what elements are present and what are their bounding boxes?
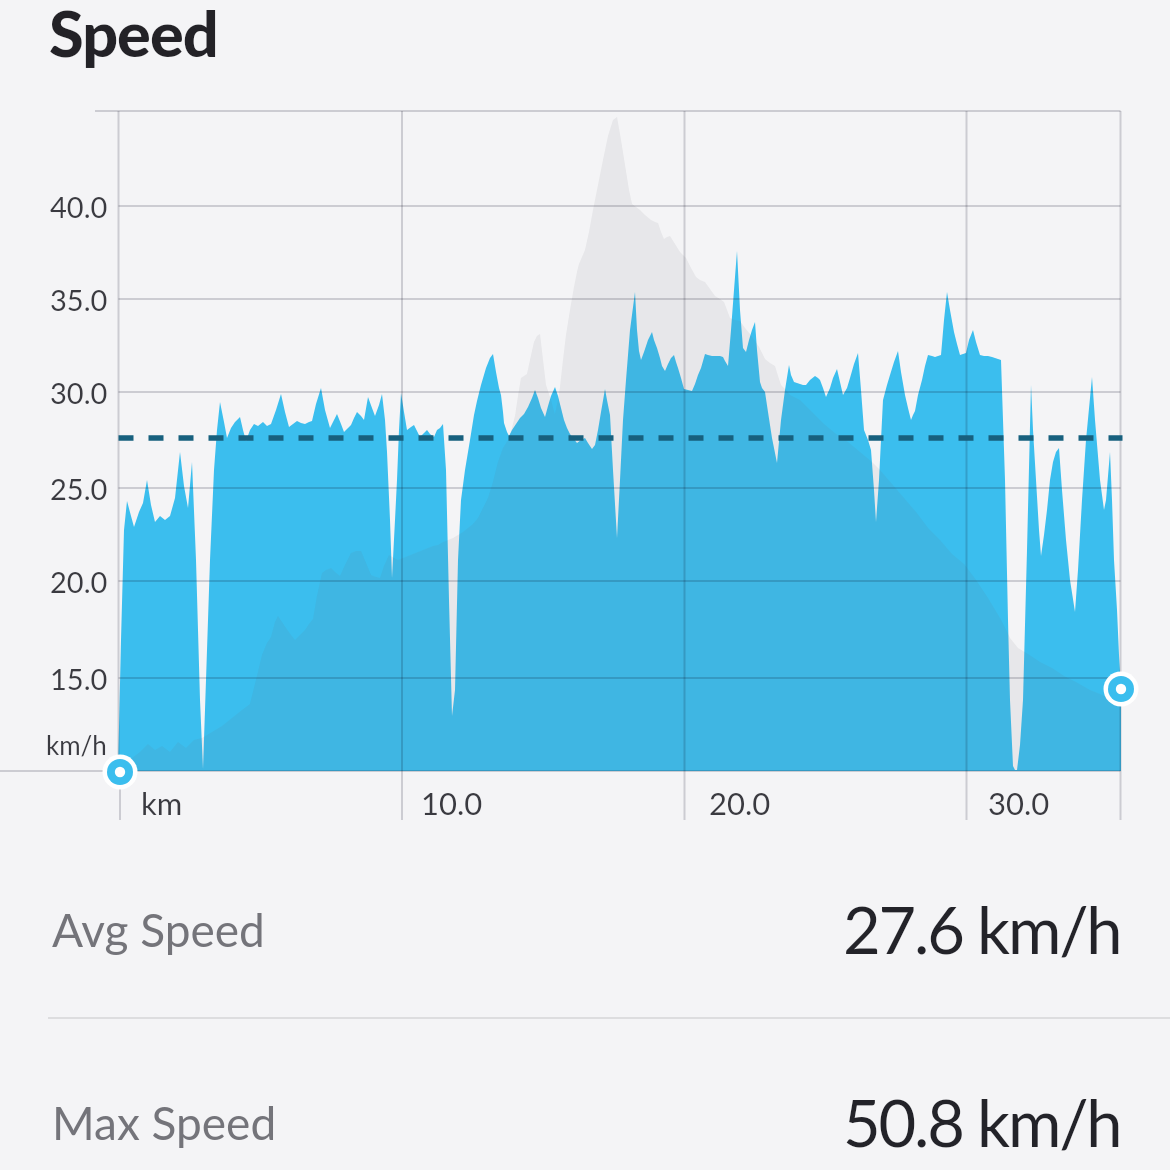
staticText: 35.0 xyxy=(50,282,108,317)
staticText: km xyxy=(141,784,183,821)
staticText: 27.6 km/h xyxy=(843,890,1121,968)
staticText: 15.0 xyxy=(50,661,108,696)
staticText: 30.0 xyxy=(50,375,108,410)
staticText: 40.0 xyxy=(50,189,108,224)
staticText: Avg Speed xyxy=(52,902,265,957)
staticText: 20.0 xyxy=(50,564,108,599)
staticText: 10.0 xyxy=(421,784,483,821)
staticText: 30.0 xyxy=(988,784,1050,821)
button[interactable]: Speed xyxy=(49,0,449,72)
staticText: 25.0 xyxy=(50,471,108,506)
staticText: Speed xyxy=(49,0,218,71)
button[interactable]: Max Speed xyxy=(52,1087,552,1157)
button[interactable]: Avg Speed xyxy=(52,894,552,964)
staticText: 50.8 km/h xyxy=(843,1083,1121,1161)
staticText: 20.0 xyxy=(709,784,771,821)
staticText: km/h xyxy=(46,729,107,760)
staticText: Max Speed xyxy=(52,1095,277,1150)
